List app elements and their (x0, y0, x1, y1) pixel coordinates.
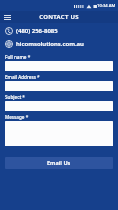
button[interactable]: Open website (0, 37, 118, 50)
staticText: (480) 256-8085 (16, 27, 58, 35)
button[interactable]: Call phone number (0, 24, 118, 37)
staticText: Full name * (5, 54, 31, 60)
other: Open website (4, 39, 13, 48)
staticText: hicomsolutions.com.au (16, 40, 84, 48)
staticText: Email Us (47, 159, 71, 167)
other: Call phone number (4, 26, 13, 35)
staticText: Subject * (5, 94, 25, 100)
staticText: Message * (5, 114, 29, 120)
staticText: 10:34 AM (97, 3, 116, 9)
staticText: CONTACT US (39, 13, 79, 21)
staticText: Email Address * (5, 74, 40, 80)
button[interactable]: Email Us (5, 157, 113, 169)
button[interactable]: Open navigation menu (2, 12, 13, 23)
